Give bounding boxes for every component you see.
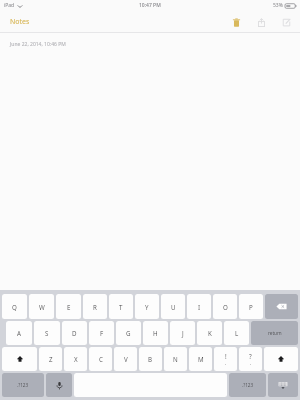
staticText: J (182, 329, 184, 337)
staticText: B (148, 355, 153, 363)
staticText: W (39, 303, 45, 311)
button[interactable]: return (251, 321, 298, 345)
staticText: N (173, 355, 178, 363)
button[interactable]: R (83, 294, 107, 319)
staticText: 10:47 PM (139, 2, 161, 9)
staticText: X (74, 355, 78, 363)
button[interactable]: O (213, 294, 237, 319)
staticText: O (223, 303, 228, 311)
button[interactable]: .?123 (2, 373, 44, 397)
staticText: L (235, 329, 239, 337)
staticText: K (208, 329, 212, 337)
button[interactable]: T (109, 294, 133, 319)
staticText: Y (145, 303, 149, 311)
button[interactable]: B (139, 347, 162, 371)
staticText: 53% (273, 2, 283, 9)
staticText: F (100, 329, 104, 337)
button[interactable]: Compose new note (278, 14, 294, 30)
button[interactable]: I (187, 294, 211, 319)
button[interactable]: Q (2, 294, 27, 319)
staticText: V (124, 355, 128, 363)
staticText: . (250, 360, 252, 367)
button[interactable]: W (29, 294, 54, 319)
staticText: Q (12, 303, 17, 311)
button[interactable]: F (89, 321, 114, 345)
staticText: ? (249, 352, 252, 360)
button[interactable]: U (161, 294, 185, 319)
staticText: M (198, 355, 204, 363)
button[interactable]: L (224, 321, 249, 345)
button[interactable]: K (197, 321, 222, 345)
staticText: P (249, 303, 253, 311)
button[interactable]: X (64, 347, 87, 371)
button[interactable]: Shift (2, 347, 37, 371)
button[interactable]: Notes (0, 14, 40, 30)
button[interactable]: N (164, 347, 187, 371)
button[interactable]: J (170, 321, 195, 345)
staticText: Notes (10, 17, 30, 27)
button[interactable]: Share (253, 14, 269, 30)
button[interactable]: P (239, 294, 263, 319)
staticText: E (67, 303, 71, 311)
button[interactable]: M (189, 347, 212, 371)
staticText: S (45, 329, 49, 337)
button[interactable]: .?123 (229, 373, 266, 397)
staticText: .?123 (242, 382, 254, 388)
button[interactable]: ? (239, 347, 262, 371)
staticText: iPad (4, 2, 15, 9)
staticText: C (99, 355, 103, 363)
button[interactable]: Shift (264, 347, 298, 371)
staticText: R (93, 303, 97, 311)
button[interactable]: E (56, 294, 81, 319)
staticText: return (268, 330, 282, 336)
button[interactable]: Y (135, 294, 159, 319)
staticText: ! (225, 352, 227, 360)
staticText: A (17, 329, 21, 337)
button[interactable]: H (143, 321, 168, 345)
button[interactable]: Backspace (265, 294, 298, 319)
staticText: H (153, 329, 158, 337)
staticText: . (225, 360, 227, 367)
button[interactable]: A (6, 321, 32, 345)
staticText: G (126, 329, 131, 337)
staticText: U (171, 303, 176, 311)
button[interactable]: S (34, 321, 60, 345)
staticText: .?123 (17, 382, 29, 388)
staticText: June 22, 2014, 10:46 PM (10, 41, 66, 48)
button[interactable]: G (116, 321, 141, 345)
staticText: I (198, 303, 201, 311)
button[interactable]: D (62, 321, 87, 345)
button[interactable]: Z (39, 347, 62, 371)
button[interactable]: V (114, 347, 137, 371)
button[interactable]: ! (214, 347, 237, 371)
button[interactable]: Hide keyboard (268, 373, 298, 397)
button[interactable]: C (89, 347, 112, 371)
staticText: T (119, 303, 123, 311)
staticText: D (72, 329, 77, 337)
staticText: Z (49, 355, 53, 363)
button[interactable]: Dictation (46, 373, 72, 397)
button[interactable]: Delete note (228, 14, 244, 30)
